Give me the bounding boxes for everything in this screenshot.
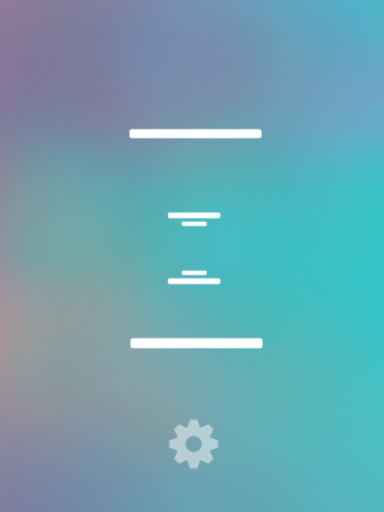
button[interactable]: Settings [162, 412, 226, 476]
button[interactable]: Password [134, 257, 254, 297]
button[interactable]: Sign In [116, 328, 276, 358]
button[interactable]: Username [134, 203, 254, 243]
